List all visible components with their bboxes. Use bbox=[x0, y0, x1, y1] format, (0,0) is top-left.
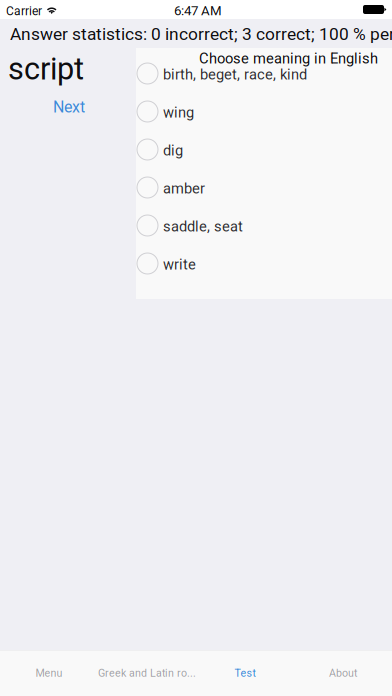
staticText: birth, beget, race, kind bbox=[163, 66, 307, 83]
button[interactable]: Next bbox=[39, 94, 99, 120]
staticText: write bbox=[163, 256, 196, 273]
staticText: wing bbox=[163, 104, 194, 121]
staticText: Menu bbox=[35, 667, 62, 679]
button[interactable]: amber bbox=[136, 169, 392, 207]
staticText: Choose meaning in English bbox=[199, 50, 378, 67]
button[interactable]: Menu bbox=[0, 650, 98, 695]
staticText: Carrier bbox=[6, 4, 42, 18]
button[interactable]: About bbox=[294, 650, 392, 695]
staticText: Answer statistics: 0 incorrect; 3 correc… bbox=[10, 24, 392, 44]
staticText: About bbox=[329, 667, 357, 679]
button[interactable]: dig bbox=[136, 131, 392, 169]
staticText: Test bbox=[234, 667, 255, 679]
staticText: dig bbox=[163, 142, 183, 159]
staticText: 6:47 AM bbox=[174, 3, 222, 19]
button[interactable]: saddle, seat bbox=[136, 207, 392, 245]
button[interactable]: birth, beget, race, kind bbox=[136, 55, 392, 93]
staticText: Greek and Latin ro... bbox=[98, 667, 196, 679]
staticText: Next bbox=[53, 98, 85, 116]
staticText: amber bbox=[163, 180, 205, 197]
button[interactable]: write bbox=[136, 245, 392, 283]
button[interactable]: Greek and Latin ro... bbox=[98, 650, 196, 695]
button[interactable]: Test bbox=[196, 650, 294, 695]
staticText: saddle, seat bbox=[163, 218, 243, 235]
staticText: script bbox=[8, 51, 84, 87]
button[interactable]: wing bbox=[136, 93, 392, 131]
